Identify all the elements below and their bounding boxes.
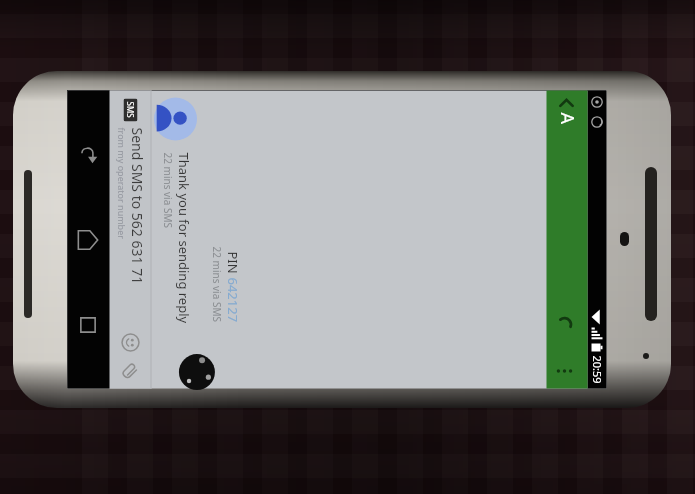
- button[interactable]: Emoji: [116, 328, 144, 356]
- staticText: 22 mins via SMS: [160, 152, 174, 228]
- button[interactable]: Recents: [67, 303, 109, 345]
- button[interactable]: Home: [67, 218, 109, 260]
- button[interactable]: More options: [544, 355, 585, 385]
- staticText: 642127: [223, 277, 241, 322]
- staticText: A: [554, 112, 579, 124]
- staticText: Send SMS to 562 631 71: [127, 127, 146, 284]
- button[interactable]: Back: [67, 133, 109, 175]
- button[interactable]: Attach: [116, 356, 144, 384]
- staticText: PIN: [223, 251, 241, 277]
- button[interactable]: Call: [544, 308, 585, 340]
- button[interactable]: Back: [546, 90, 587, 113]
- staticText: Thank you for sending reply: [174, 152, 192, 323]
- staticText: from my operator number: [115, 127, 127, 239]
- staticText: 20:59: [589, 355, 604, 384]
- staticText: 22 mins via SMS: [209, 246, 223, 322]
- staticText: SMS: [124, 101, 135, 118]
